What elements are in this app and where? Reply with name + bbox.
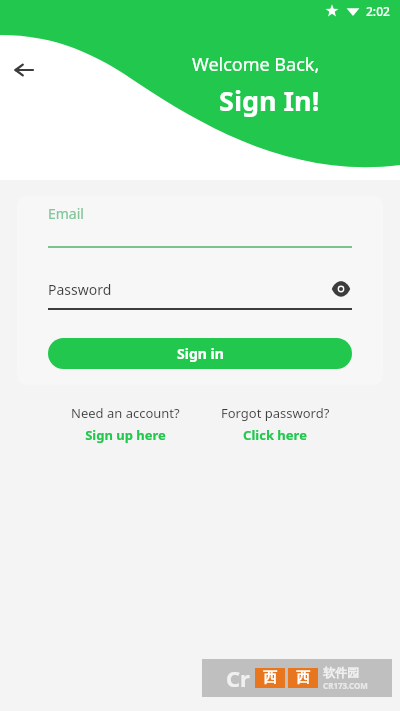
- button[interactable]: Sign in: [48, 338, 352, 369]
- staticText: Need an account?: [71, 404, 180, 422]
- staticText: Welcome Back,: [192, 52, 320, 77]
- staticText: Email: [48, 204, 84, 223]
- button[interactable]: Back: [10, 56, 38, 84]
- staticText: Forgot password?: [221, 404, 330, 422]
- staticText: Click here: [243, 426, 307, 444]
- staticText: Sign in: [177, 344, 224, 363]
- button[interactable]: Show password: [330, 278, 352, 300]
- button[interactable]: Forgot password?: [200, 404, 350, 444]
- staticText: Cr: [226, 663, 250, 693]
- staticText: CR173.COM: [323, 680, 368, 691]
- staticText: 西: [296, 669, 310, 687]
- staticText: 软件园: [323, 665, 359, 680]
- staticText: Password: [48, 280, 330, 299]
- staticText: Sign In!: [219, 82, 320, 119]
- staticText: 西: [263, 669, 277, 687]
- button[interactable]: Need an account?: [50, 404, 200, 444]
- staticText: 2:02: [366, 3, 390, 19]
- staticText: Sign up here: [85, 426, 166, 444]
